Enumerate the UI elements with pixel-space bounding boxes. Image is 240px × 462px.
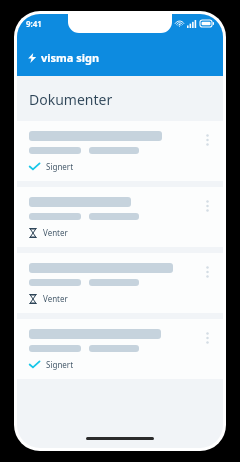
button[interactable]: Venter bbox=[17, 253, 223, 313]
button[interactable]: More options bbox=[199, 264, 215, 280]
button[interactable]: More options bbox=[199, 198, 215, 214]
button[interactable]: Signert bbox=[17, 121, 223, 181]
staticText: Signert bbox=[46, 161, 74, 172]
staticText: 9:41 bbox=[26, 18, 42, 29]
button[interactable]: Signert bbox=[17, 319, 223, 379]
button[interactable]: More options bbox=[199, 330, 215, 346]
button[interactable]: Venter bbox=[17, 187, 223, 247]
button[interactable]: More options bbox=[199, 132, 215, 148]
staticText: Venter bbox=[43, 227, 68, 238]
staticText: visma sign bbox=[41, 50, 100, 65]
staticText: Venter bbox=[43, 293, 68, 304]
staticText: Dokumenter bbox=[29, 90, 113, 109]
staticText: Signert bbox=[46, 359, 74, 370]
